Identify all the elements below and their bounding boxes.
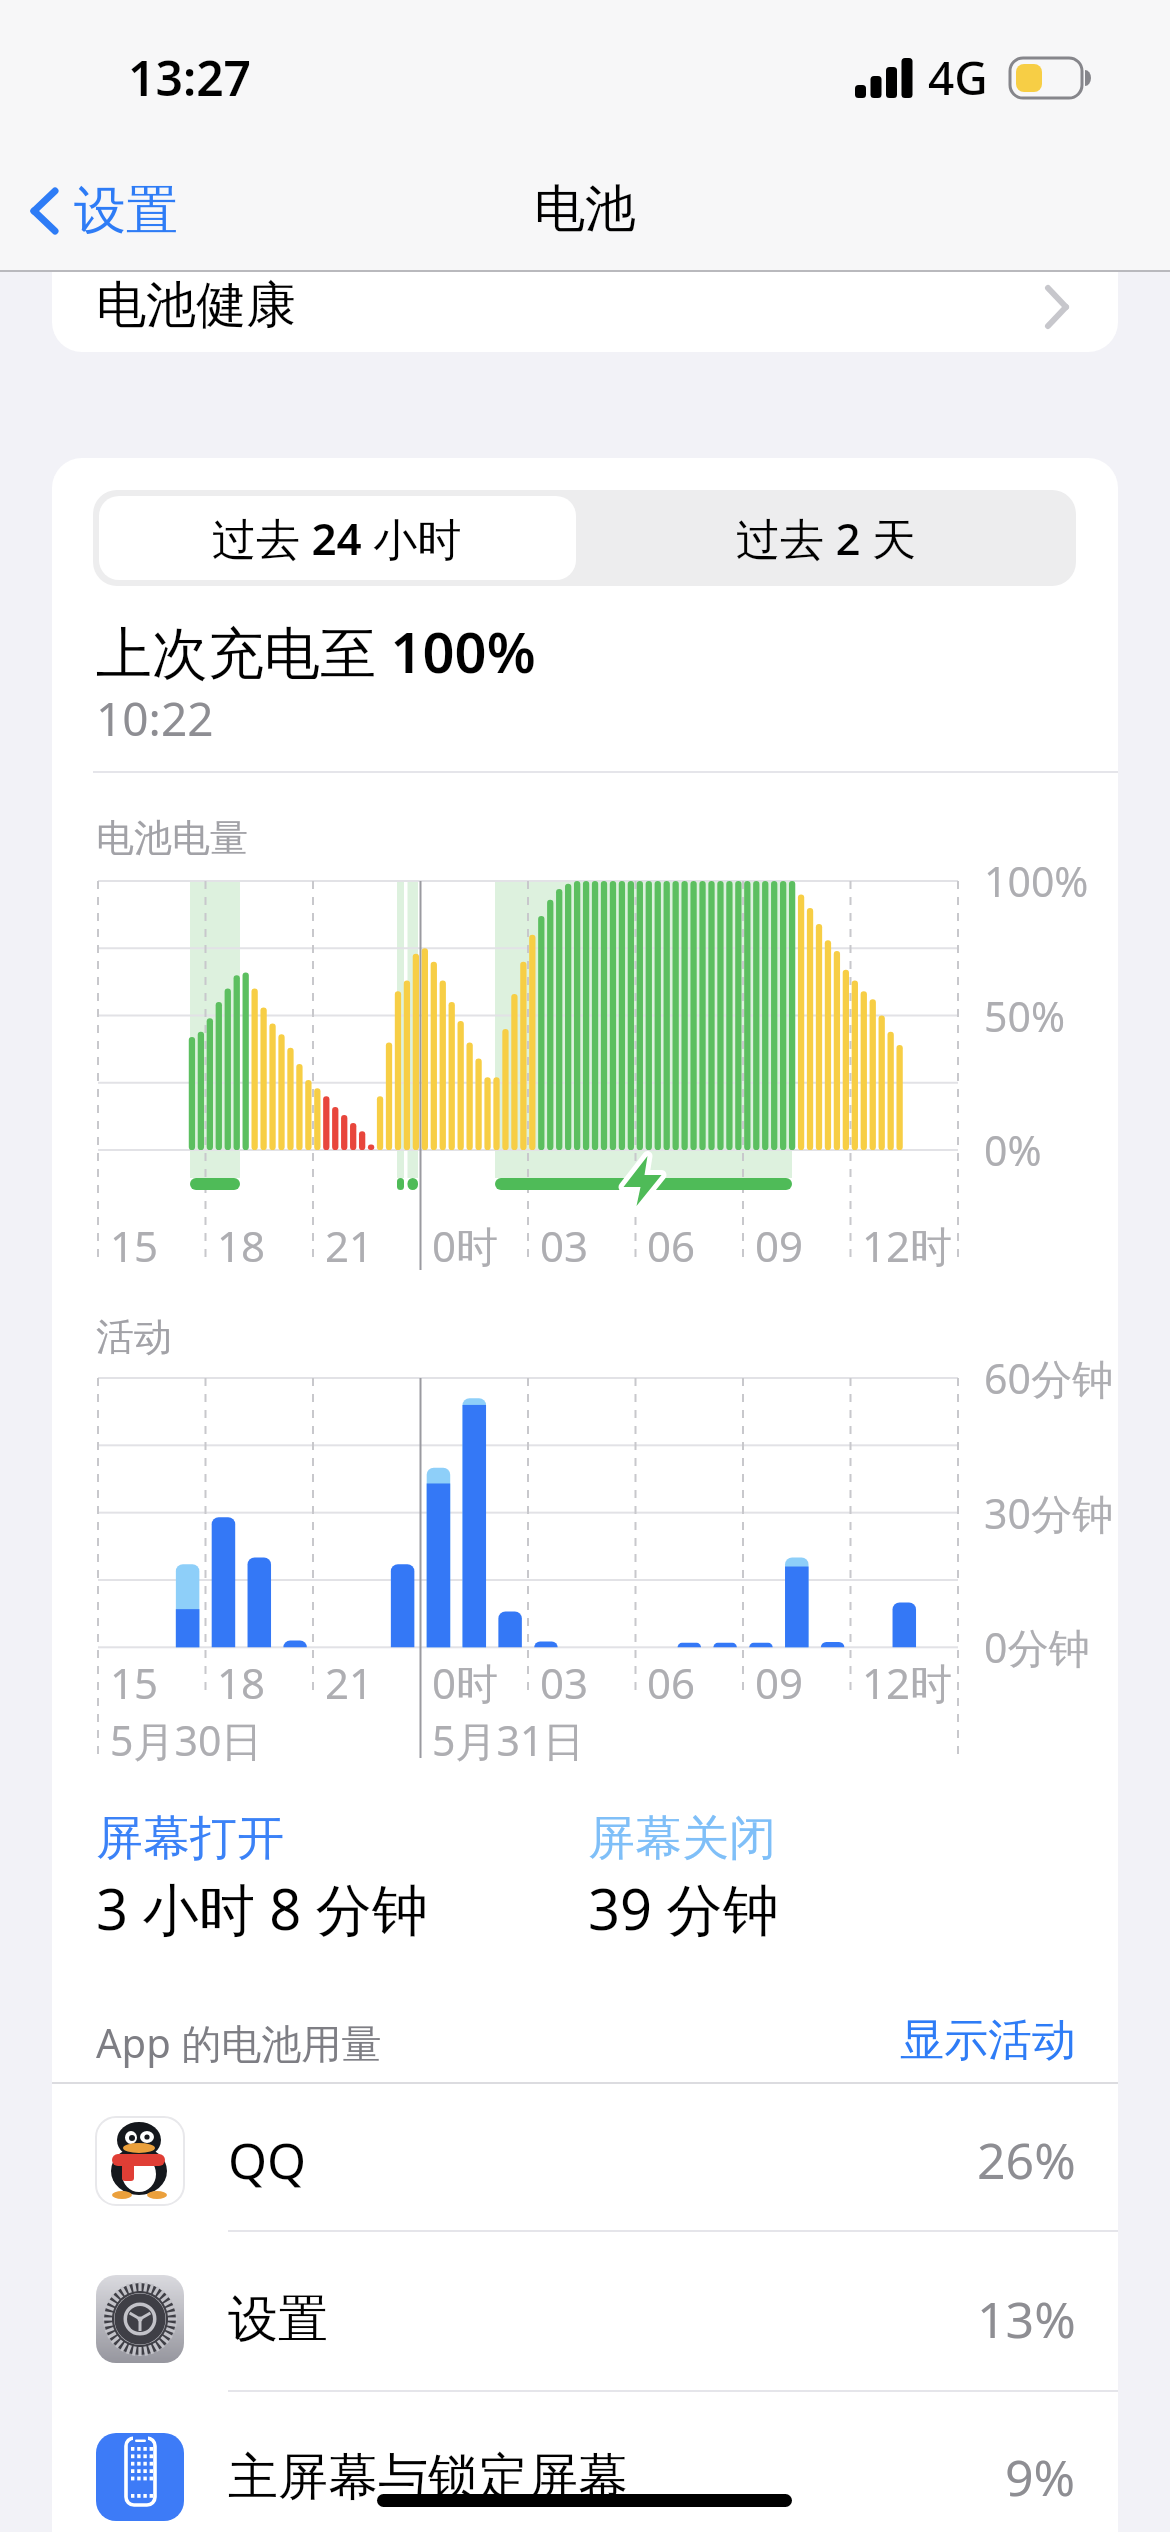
staticText: 09 — [755, 1654, 804, 1711]
staticText: 过去 2 天 — [736, 508, 917, 568]
staticText: 4G — [928, 46, 988, 109]
staticText: 13:27 — [128, 45, 252, 110]
staticText: 活动 — [96, 1313, 172, 1361]
button[interactable] — [52, 272, 1118, 352]
staticText: 5月30日 — [110, 1712, 263, 1768]
staticText: 0时 — [432, 1217, 499, 1274]
staticText: 60分钟 — [984, 1350, 1113, 1406]
staticText: 设置 — [228, 2288, 328, 2351]
staticText: 0时 — [432, 1654, 499, 1711]
staticText: 0分钟 — [984, 1619, 1090, 1675]
staticText: 10:22 — [96, 687, 214, 750]
staticText: 过去 24 小时 — [212, 508, 462, 568]
staticText: 100% — [984, 853, 1089, 909]
staticText: 电池健康 — [96, 274, 296, 337]
button[interactable] — [99, 496, 576, 580]
staticText: 06 — [647, 1217, 696, 1274]
button[interactable] — [576, 496, 1076, 580]
staticText: 15 — [110, 1217, 159, 1274]
staticText: 18 — [217, 1217, 266, 1274]
staticText: 03 — [540, 1217, 589, 1274]
staticText: 电池电量 — [96, 814, 248, 862]
staticText: 21 — [325, 1217, 374, 1274]
staticText: 13% — [977, 2285, 1076, 2353]
staticText: 09 — [755, 1217, 804, 1274]
staticText: 显示活动 — [900, 2013, 1076, 2068]
staticText: 26% — [977, 2126, 1076, 2194]
staticText: 屏幕打开 — [96, 1809, 284, 1868]
button[interactable] — [52, 2392, 1118, 2532]
staticText: 0% — [984, 1122, 1042, 1178]
staticText: 屏幕关闭 — [588, 1809, 776, 1868]
staticText: 12时 — [862, 1654, 953, 1711]
staticText: 18 — [217, 1654, 266, 1711]
staticText: 12时 — [862, 1217, 953, 1274]
staticText: 电池 — [534, 177, 636, 241]
button[interactable] — [880, 2010, 1080, 2072]
button[interactable] — [20, 178, 210, 244]
staticText: 主屏幕与锁定屏幕 — [228, 2446, 628, 2509]
staticText: 3 小时 8 分钟 — [96, 1870, 428, 1946]
staticText: 03 — [540, 1654, 589, 1711]
staticText: 15 — [110, 1654, 159, 1711]
staticText: QQ — [228, 2126, 307, 2194]
staticText: 21 — [325, 1654, 374, 1711]
staticText: 30分钟 — [984, 1485, 1113, 1541]
button[interactable] — [52, 2084, 1118, 2231]
staticText: 设置 — [74, 178, 178, 244]
staticText: 上次充电至 100% — [96, 613, 536, 689]
staticText: 39 分钟 — [588, 1870, 779, 1946]
staticText: App 的电池用量 — [96, 2015, 382, 2070]
staticText: 06 — [647, 1654, 696, 1711]
staticText: 50% — [984, 988, 1065, 1044]
staticText: 9% — [1005, 2443, 1076, 2511]
button[interactable] — [52, 2232, 1118, 2391]
staticText: 5月31日 — [432, 1712, 585, 1768]
